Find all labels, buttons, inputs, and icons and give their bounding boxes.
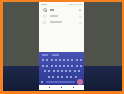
button[interactable] bbox=[41, 63, 44, 68]
button[interactable] bbox=[41, 57, 44, 62]
button[interactable] bbox=[77, 68, 80, 73]
button[interactable]: Use suggestion bbox=[78, 15, 81, 18]
button[interactable] bbox=[66, 57, 69, 62]
button[interactable]: Navigation bbox=[48, 86, 51, 89]
button[interactable] bbox=[70, 57, 73, 62]
button[interactable] bbox=[75, 57, 78, 62]
button[interactable] bbox=[51, 74, 54, 79]
button[interactable] bbox=[50, 63, 53, 68]
button[interactable] bbox=[70, 63, 73, 68]
button[interactable]: Use suggestion bbox=[78, 21, 81, 24]
button[interactable] bbox=[58, 57, 61, 62]
button[interactable] bbox=[66, 63, 69, 68]
button[interactable] bbox=[79, 63, 82, 68]
button[interactable] bbox=[64, 68, 67, 73]
button[interactable] bbox=[74, 74, 77, 79]
button[interactable] bbox=[50, 57, 53, 62]
button[interactable] bbox=[75, 63, 78, 68]
button[interactable] bbox=[62, 57, 65, 62]
button[interactable]: Use suggestion bbox=[39, 13, 84, 19]
button[interactable] bbox=[60, 74, 63, 79]
button[interactable]: Clear bbox=[78, 8, 81, 11]
button[interactable] bbox=[54, 57, 57, 62]
button[interactable]: Space bbox=[46, 81, 75, 83]
button[interactable] bbox=[58, 63, 61, 68]
button[interactable]: Send bbox=[77, 79, 83, 85]
button[interactable] bbox=[45, 63, 48, 68]
button[interactable] bbox=[52, 68, 55, 73]
button[interactable] bbox=[65, 74, 68, 79]
button[interactable] bbox=[43, 68, 46, 73]
button[interactable] bbox=[47, 74, 50, 79]
button[interactable]: Clear bbox=[39, 6, 84, 13]
button[interactable] bbox=[45, 57, 48, 62]
button[interactable]: Use suggestion bbox=[39, 19, 84, 25]
button[interactable] bbox=[56, 68, 59, 73]
button[interactable] bbox=[73, 68, 76, 73]
button[interactable]: Navigation bbox=[72, 86, 75, 89]
button[interactable] bbox=[47, 68, 50, 73]
button[interactable] bbox=[68, 68, 71, 73]
button[interactable] bbox=[60, 68, 63, 73]
button[interactable] bbox=[69, 74, 72, 79]
button[interactable] bbox=[79, 57, 82, 62]
button[interactable] bbox=[54, 63, 57, 68]
button[interactable]: Navigation bbox=[60, 86, 63, 89]
button[interactable] bbox=[62, 63, 65, 68]
button[interactable] bbox=[56, 74, 59, 79]
